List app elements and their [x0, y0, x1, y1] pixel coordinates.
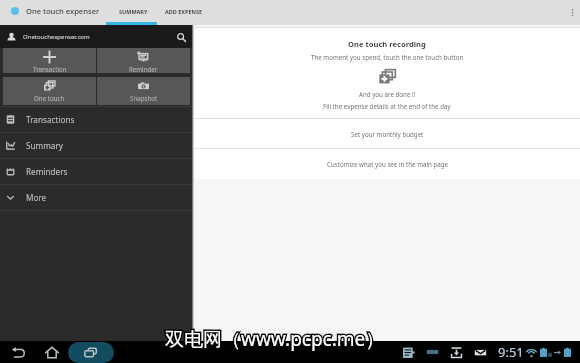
staticText: The moment you spend, touch the one touc… [311, 53, 464, 61]
button[interactable]: Reminder [97, 48, 190, 73]
button[interactable]: Summary [0, 133, 192, 158]
button[interactable]: Search [170, 26, 192, 48]
staticText: Reminder [129, 65, 158, 73]
staticText: 双电网（www.pcpc.me） [165, 326, 385, 352]
button[interactable]: SUMMARY [108, 0, 159, 22]
button[interactable]: Transaction [3, 48, 96, 73]
staticText: Summary [26, 140, 64, 151]
staticText: More [26, 192, 47, 203]
staticText: 9:51 [498, 343, 524, 361]
button[interactable]: Set your monthly budget [194, 119, 580, 148]
staticText: And you are done !! [359, 90, 416, 98]
staticText: One touch expenser [26, 6, 100, 16]
staticText: Transaction [33, 65, 67, 73]
button[interactable]: One touch expenser [0, 0, 100, 22]
staticText: Reminders [26, 166, 68, 177]
staticText: One touch [34, 94, 65, 102]
button[interactable]: Snapshot [97, 77, 190, 105]
staticText: ADD EXPENSE [165, 8, 203, 15]
button[interactable]: Recent apps [68, 341, 114, 363]
button[interactable]: One touch recording [194, 28, 580, 118]
button[interactable]: More [0, 185, 192, 210]
button[interactable]: Transactions [0, 107, 192, 132]
button[interactable]: More options [564, 0, 580, 25]
button[interactable]: Reminders [0, 159, 192, 184]
staticText: 双电网（www.pcpc.me） [165, 326, 385, 352]
button[interactable]: Back [0, 341, 36, 363]
button[interactable]: Home [36, 341, 68, 363]
button[interactable]: One touch [3, 77, 96, 105]
staticText: Snapshot [130, 94, 158, 102]
button[interactable]: Onetouchexpenser.com [0, 25, 192, 48]
staticText: Onetouchexpenser.com [23, 33, 90, 41]
staticText: Customize what you see in the main page [327, 160, 448, 168]
staticText: One touch recording [348, 39, 426, 49]
button[interactable]: ADD EXPENSE [160, 0, 208, 22]
staticText: SUMMARY [119, 8, 148, 15]
button[interactable]: Customize what you see in the main page [194, 149, 580, 179]
staticText: Set your monthly budget [351, 130, 424, 138]
staticText: Transactions [26, 114, 75, 125]
staticText: Fill the expense details at the end of t… [323, 102, 451, 110]
